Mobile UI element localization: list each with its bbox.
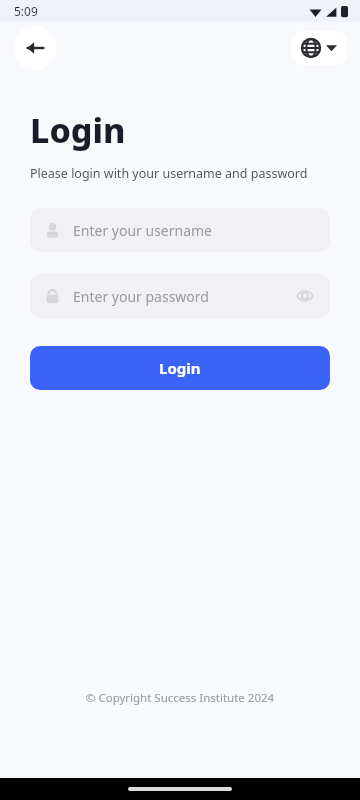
button[interactable]: Select language bbox=[291, 31, 347, 65]
staticText: © Copyright Success Institute 2024 bbox=[0, 690, 360, 706]
staticText: Login bbox=[159, 358, 201, 378]
staticText: Enter your username bbox=[73, 221, 213, 240]
staticText: Please login with your username and pass… bbox=[30, 165, 308, 182]
staticText: 5:09 bbox=[14, 3, 38, 19]
button[interactable]: Show password bbox=[294, 285, 316, 307]
staticText: Login bbox=[30, 107, 126, 153]
button[interactable]: Back bbox=[13, 26, 57, 70]
button[interactable]: Login bbox=[30, 346, 330, 390]
button[interactable]: Enter your password bbox=[30, 274, 330, 318]
staticText: Enter your password bbox=[73, 287, 209, 306]
button[interactable]: Enter your username bbox=[30, 208, 330, 252]
